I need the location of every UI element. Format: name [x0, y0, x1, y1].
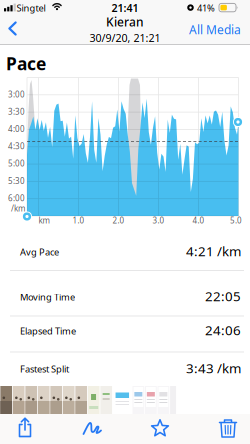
staticText: 4:30 — [8, 141, 25, 151]
button[interactable]: Share — [10, 413, 40, 443]
button[interactable]: Favorite — [145, 413, 175, 443]
staticText: 3:00 — [8, 89, 25, 100]
staticText: Pace — [6, 52, 46, 75]
staticText: 5:00 — [8, 158, 25, 169]
button[interactable]: All Media — [185, 17, 245, 41]
staticText: Singtel — [16, 2, 45, 14]
staticText: Elapsed Time — [20, 325, 76, 337]
staticText: km — [38, 215, 49, 226]
staticText: /km — [11, 203, 25, 214]
staticText: Kieran — [106, 14, 144, 30]
staticText: 4:21 /km — [186, 242, 241, 260]
staticText: 6:00 — [8, 193, 25, 203]
staticText: 5.0 — [230, 215, 242, 226]
staticText: 3:43 /km — [186, 359, 241, 377]
staticText: Avg Pace — [20, 246, 59, 258]
staticText: 2.0 — [112, 215, 124, 226]
staticText: 4:00 — [8, 124, 25, 134]
staticText: 24:06 — [205, 321, 241, 339]
staticText: 5:30 — [8, 175, 25, 186]
staticText: 4.0 — [192, 215, 204, 226]
button[interactable]: Back — [2, 20, 24, 36]
staticText: 3.0 — [152, 215, 164, 226]
staticText: 21:41 — [111, 1, 138, 15]
button[interactable]: Edit — [78, 413, 108, 443]
staticText: 3:30 — [8, 106, 25, 117]
staticText: 22:05 — [205, 287, 241, 305]
staticText: 1.0 — [72, 215, 84, 226]
button[interactable]: Delete — [213, 413, 243, 443]
staticText: All Media — [189, 21, 241, 37]
staticText: Moving Time — [20, 291, 75, 303]
staticText: Fastest Split — [20, 363, 69, 375]
staticText: 41% — [197, 2, 215, 14]
staticText: 30/9/20, 21:21 — [89, 31, 160, 45]
button[interactable]: Media thumbnails — [0, 386, 176, 414]
